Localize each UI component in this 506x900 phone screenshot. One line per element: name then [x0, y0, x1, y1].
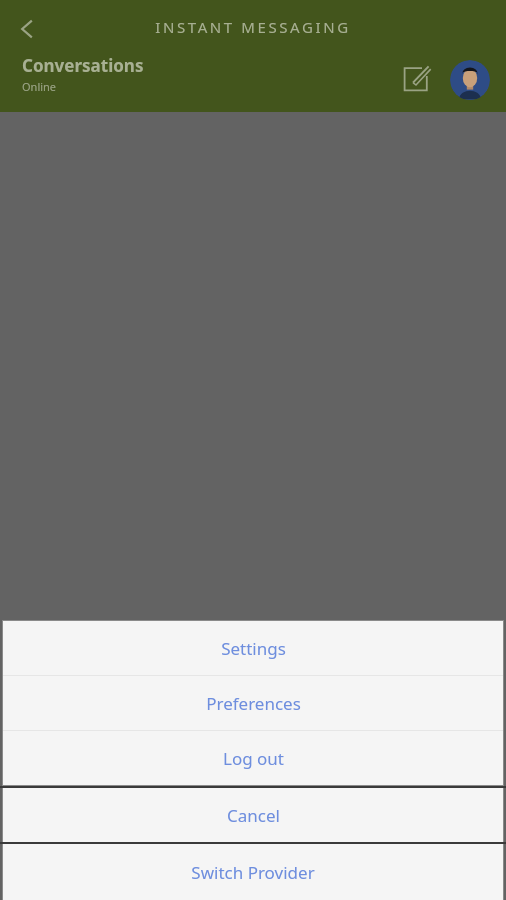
- button[interactable]: Cancel: [3, 788, 503, 842]
- staticText: Conversations: [22, 54, 144, 77]
- staticText: Settings: [221, 637, 286, 660]
- staticText: Cancel: [227, 804, 280, 827]
- staticText: INSTANT MESSAGING: [0, 17, 506, 37]
- staticText: Online: [22, 79, 57, 94]
- button[interactable]: Switch Provider: [3, 844, 503, 900]
- button[interactable]: Back: [6, 8, 48, 50]
- staticText: Preferences: [206, 692, 301, 715]
- button[interactable]: Preferences: [3, 676, 503, 730]
- button[interactable]: Compose new message: [395, 58, 437, 100]
- staticText: Switch Provider: [191, 861, 315, 884]
- button[interactable]: Profile: [450, 60, 490, 100]
- staticText: Log out: [223, 747, 284, 770]
- button[interactable]: Log out: [3, 731, 503, 785]
- button[interactable]: Settings: [3, 621, 503, 675]
